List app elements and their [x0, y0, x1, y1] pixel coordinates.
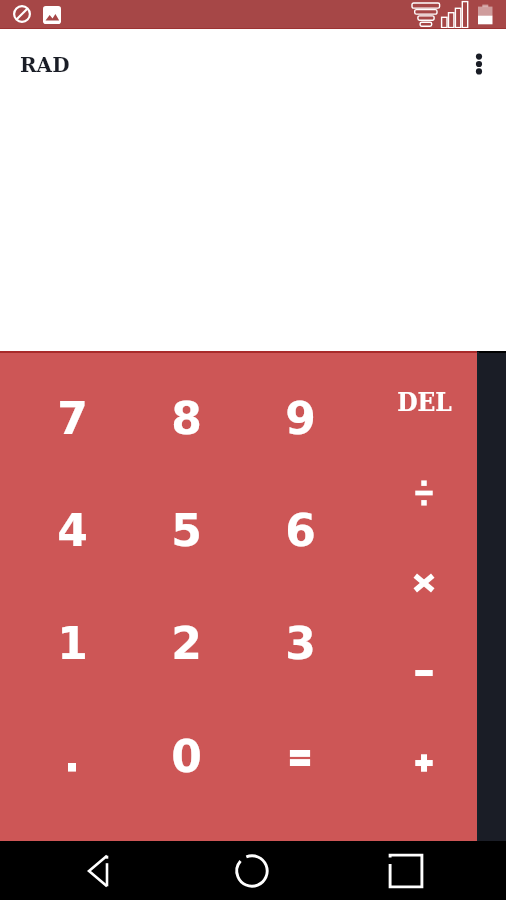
staticText: 8 — [171, 393, 202, 444]
staticText: RAD — [20, 53, 70, 76]
staticText: 0 — [171, 731, 202, 782]
staticText: 7 — [57, 393, 88, 444]
button[interactable]: Back — [56, 841, 140, 900]
button[interactable]: Subtract — [364, 628, 484, 718]
button[interactable]: Equals — [243, 700, 357, 813]
button[interactable]: Multiply — [364, 538, 484, 628]
other: Screenshot — [43, 6, 61, 24]
button[interactable]: 6 — [243, 474, 357, 587]
button[interactable]: 3 — [243, 587, 357, 700]
staticText: 3 — [285, 618, 316, 669]
button[interactable]: 8 — [129, 362, 243, 474]
other: Do not disturb — [13, 5, 31, 23]
staticText: 1 — [57, 618, 88, 669]
staticText: 6 — [285, 505, 316, 556]
staticText: 5 — [171, 505, 202, 556]
button[interactable]: Add — [364, 718, 484, 808]
button[interactable]: RAD — [0, 36, 92, 92]
button[interactable]: 4 — [15, 474, 129, 587]
staticText: 9 — [285, 393, 316, 444]
button[interactable]: Recent apps — [364, 841, 448, 900]
button[interactable]: Decimal point — [15, 700, 129, 813]
button[interactable]: Home — [210, 841, 294, 900]
button[interactable]: 2 — [129, 587, 243, 700]
button[interactable]: 9 — [243, 362, 357, 474]
staticText: 4 — [57, 505, 88, 556]
button[interactable]: Divide — [364, 448, 484, 538]
staticText: 2 — [171, 618, 202, 669]
button[interactable]: DEL — [364, 357, 484, 448]
button[interactable]: 0 — [129, 700, 243, 813]
staticText: DEL — [397, 387, 452, 418]
button[interactable]: More options — [455, 37, 503, 85]
button[interactable]: 1 — [15, 587, 129, 700]
button[interactable]: 7 — [15, 362, 129, 474]
button[interactable]: 5 — [129, 474, 243, 587]
